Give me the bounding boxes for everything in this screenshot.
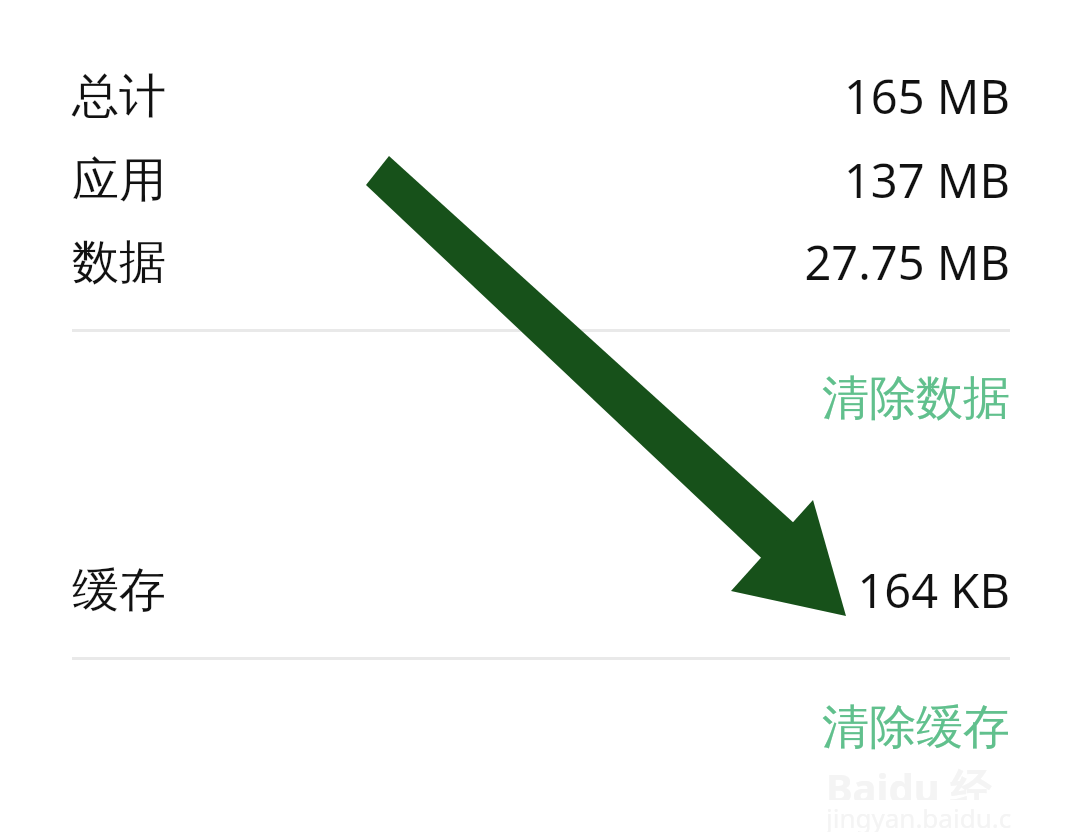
staticText: 137 MB xyxy=(843,148,1010,212)
staticText: jingyan.baidu.com xyxy=(826,800,1026,832)
staticText: 数据 xyxy=(72,233,166,292)
button[interactable]: 总计 xyxy=(0,52,1080,140)
staticText: 缓存 xyxy=(72,561,166,620)
staticText: Baidu 经验 xyxy=(826,760,1026,800)
other: Annotation arrow xyxy=(0,0,1080,838)
button[interactable]: 应用 xyxy=(0,136,1080,224)
staticText: 165 MB xyxy=(843,64,1010,128)
staticText: 164 KB xyxy=(857,558,1010,622)
button[interactable]: 清除数据 xyxy=(690,354,1010,442)
staticText: 27.75 MB xyxy=(804,230,1010,294)
button[interactable]: 数据 xyxy=(0,218,1080,306)
staticText: 清除数据 xyxy=(822,369,1010,428)
staticText: 应用 xyxy=(72,151,166,210)
staticText: 清除缓存 xyxy=(822,698,1010,757)
staticText: 总计 xyxy=(72,67,166,126)
button[interactable]: 缓存 xyxy=(0,546,1080,634)
button[interactable]: 清除缓存 xyxy=(690,683,1010,771)
